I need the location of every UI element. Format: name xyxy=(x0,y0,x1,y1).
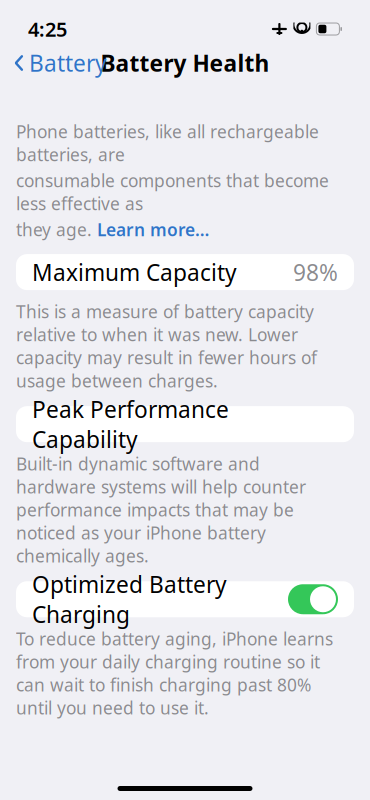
staticText: 98% xyxy=(293,257,338,287)
staticText: Optimized Battery Charging xyxy=(32,569,227,629)
button[interactable]: Peak Performance Capability xyxy=(16,406,354,442)
staticText: To reduce battery aging, iPhone learns f… xyxy=(16,627,333,719)
staticText: they age. xyxy=(16,218,97,241)
staticText: Built-in dynamic software and hardware s… xyxy=(16,452,306,567)
staticText: Learn more… xyxy=(97,218,209,241)
staticText: 4:25 xyxy=(28,16,67,42)
staticText: Maximum Capacity xyxy=(32,257,237,287)
staticText: Battery xyxy=(29,48,107,78)
staticText: Phone batteries, like all rechargeable b… xyxy=(16,120,319,166)
button[interactable]: Battery xyxy=(0,44,121,82)
staticText: Battery Health xyxy=(100,48,269,78)
button[interactable]: Optimized Battery Charging xyxy=(16,581,354,617)
button[interactable]: Learn more… xyxy=(97,218,209,241)
staticText: This is a measure of battery capacity re… xyxy=(16,300,317,392)
staticText: Peak Performance Capability xyxy=(32,394,229,454)
staticText: consumable components that become less e… xyxy=(16,169,329,215)
button[interactable]: Maximum Capacity xyxy=(16,254,354,290)
